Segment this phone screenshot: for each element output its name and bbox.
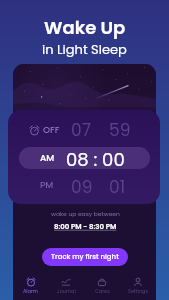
staticText: OFF [43, 124, 60, 137]
staticText: Wake Up [44, 15, 126, 40]
button[interactable]: PM [40, 179, 54, 192]
staticText: Journal [57, 288, 76, 295]
button[interactable]: Settings [120, 271, 156, 300]
staticText: Cares [95, 288, 110, 295]
button[interactable] [19, 147, 150, 169]
staticText: Settings [128, 288, 149, 295]
staticText: 8:00 PM - 8:30 PM [54, 222, 117, 232]
staticText: Alarm [23, 288, 38, 295]
staticText: 07 [71, 118, 91, 142]
staticText: 09 [71, 175, 93, 199]
staticText: wake up easy between [51, 210, 120, 218]
staticText: AM [40, 152, 55, 165]
staticText: 08 : 00 [66, 147, 125, 172]
staticText: in Light Sleep [42, 40, 127, 58]
button[interactable]: Journal [48, 271, 84, 300]
staticText: 59 [109, 118, 131, 142]
button[interactable]: Track my first night [42, 248, 128, 266]
button[interactable]: Cares [84, 271, 120, 300]
staticText: Track my first night [51, 252, 119, 262]
button[interactable]: OFF [29, 122, 60, 138]
button[interactable]: Alarm [13, 271, 48, 300]
staticText: 01 [109, 175, 126, 199]
